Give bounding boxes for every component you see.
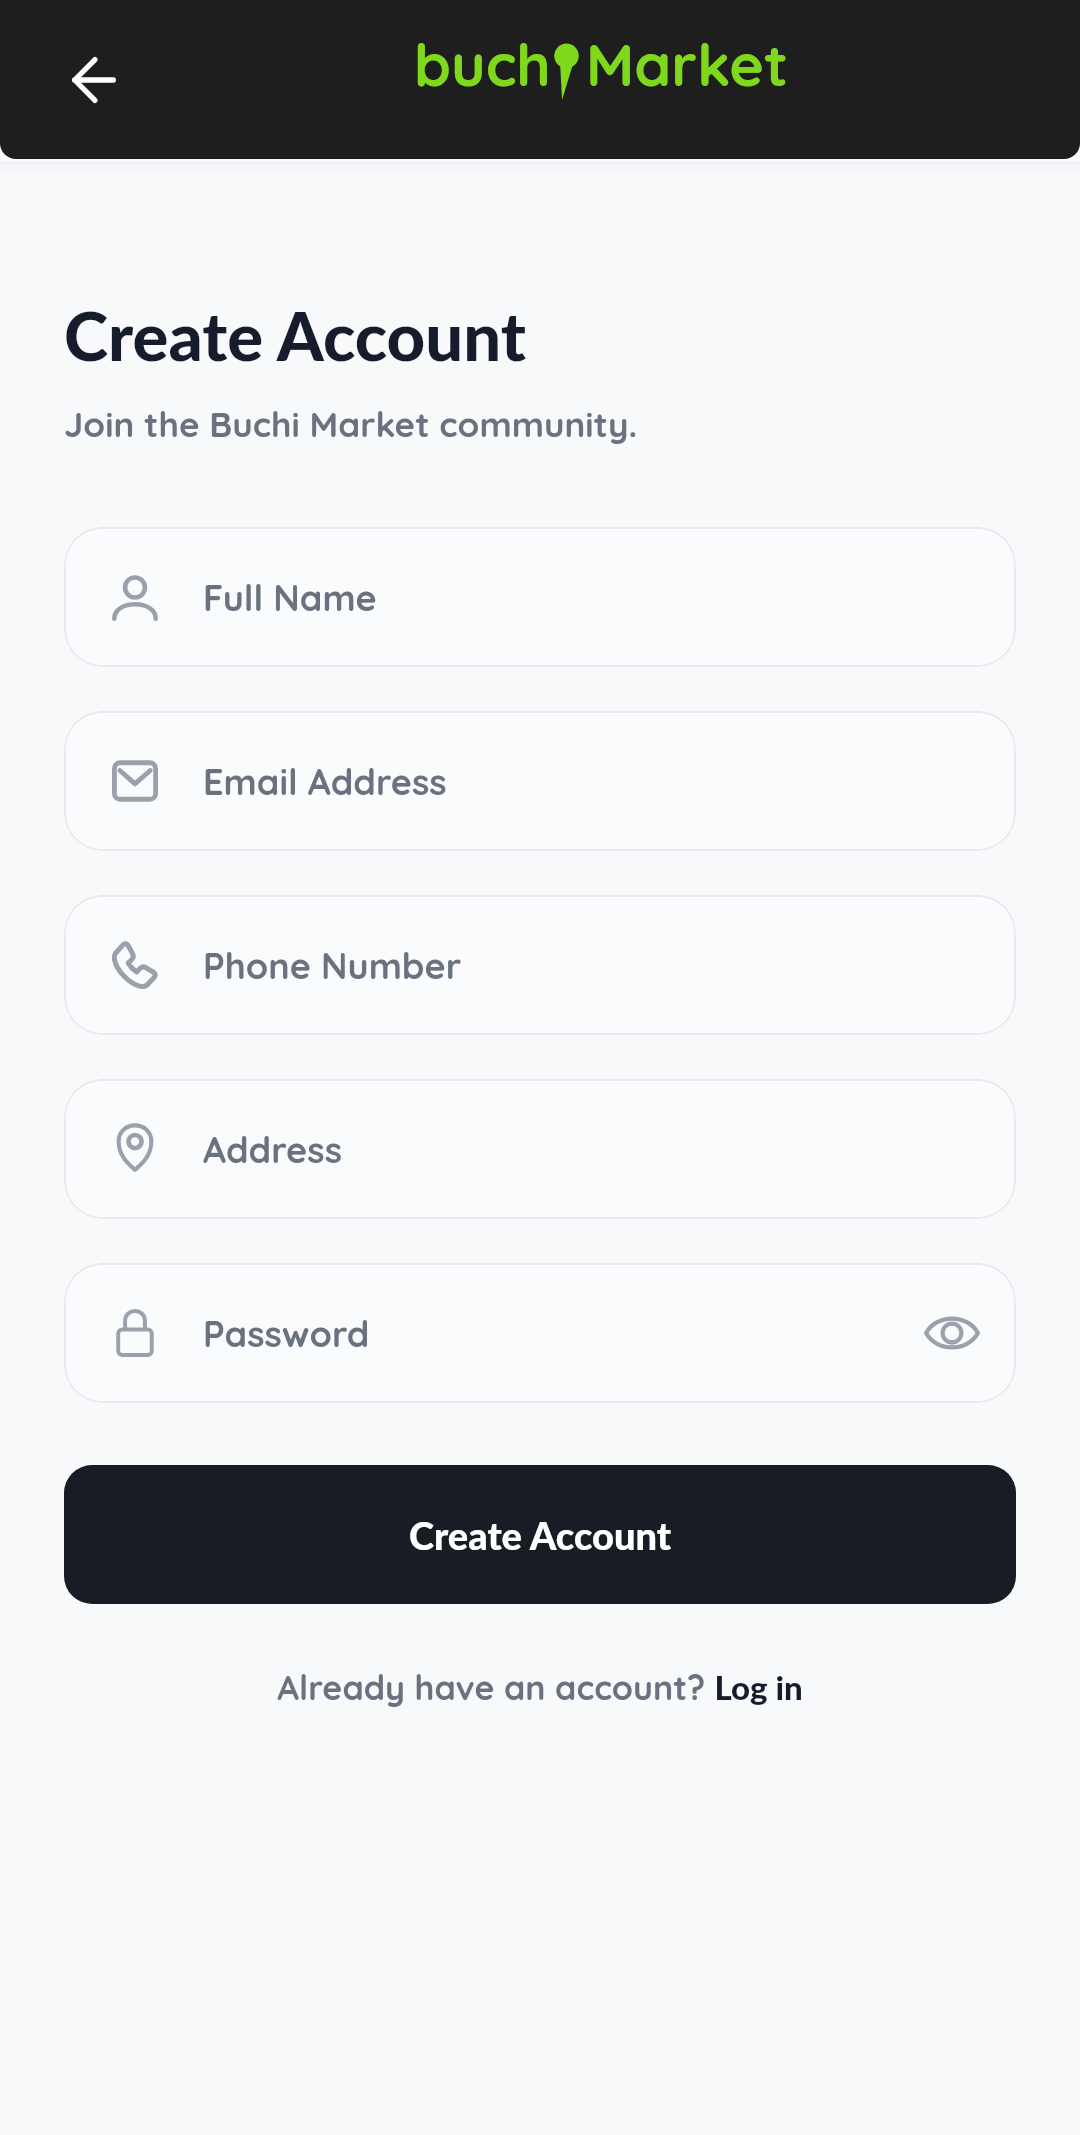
button[interactable]: Full Name <box>64 527 1016 667</box>
staticText: buch <box>414 27 551 101</box>
button[interactable]: Create Account <box>64 1465 1016 1604</box>
button[interactable]: Show password <box>922 1303 982 1363</box>
staticText: Already have an account? Log in <box>277 1666 803 1709</box>
staticText: Password <box>203 1311 370 1356</box>
staticText: Create Account <box>64 295 527 375</box>
staticText: Phone Number <box>203 943 462 988</box>
staticText: Email Address <box>203 759 447 804</box>
button[interactable]: Address <box>64 1079 1016 1219</box>
button[interactable]: Password <box>64 1263 1016 1403</box>
staticText: Full Name <box>203 575 377 620</box>
staticText: Market <box>586 27 789 101</box>
staticText: Address <box>203 1127 342 1172</box>
button[interactable]: Phone Number <box>64 895 1016 1035</box>
button[interactable]: Back <box>30 16 158 144</box>
button[interactable]: Already have an account? Log in <box>64 1666 1016 1709</box>
staticText: Create Account <box>409 1512 672 1558</box>
staticText: Join the Buchi Market community. <box>64 402 638 446</box>
button[interactable]: Email Address <box>64 711 1016 851</box>
